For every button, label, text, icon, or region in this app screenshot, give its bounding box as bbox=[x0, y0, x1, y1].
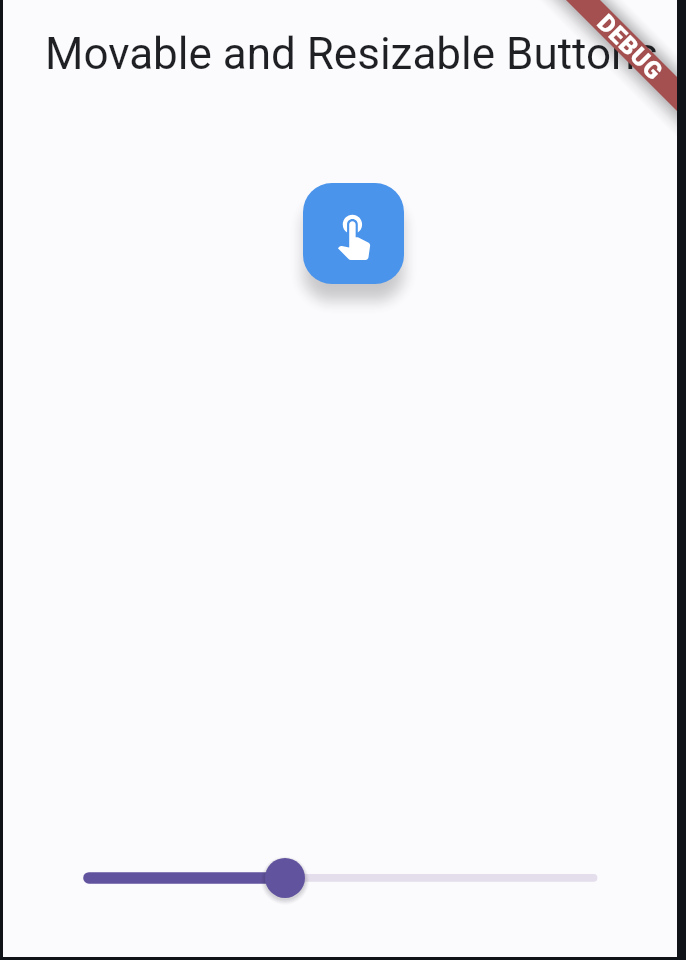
staticText: Movable and Resizable Buttons bbox=[45, 28, 659, 80]
button[interactable]: Movable resizable button bbox=[303, 183, 404, 284]
button[interactable]: Button size slider bbox=[63, 850, 623, 906]
